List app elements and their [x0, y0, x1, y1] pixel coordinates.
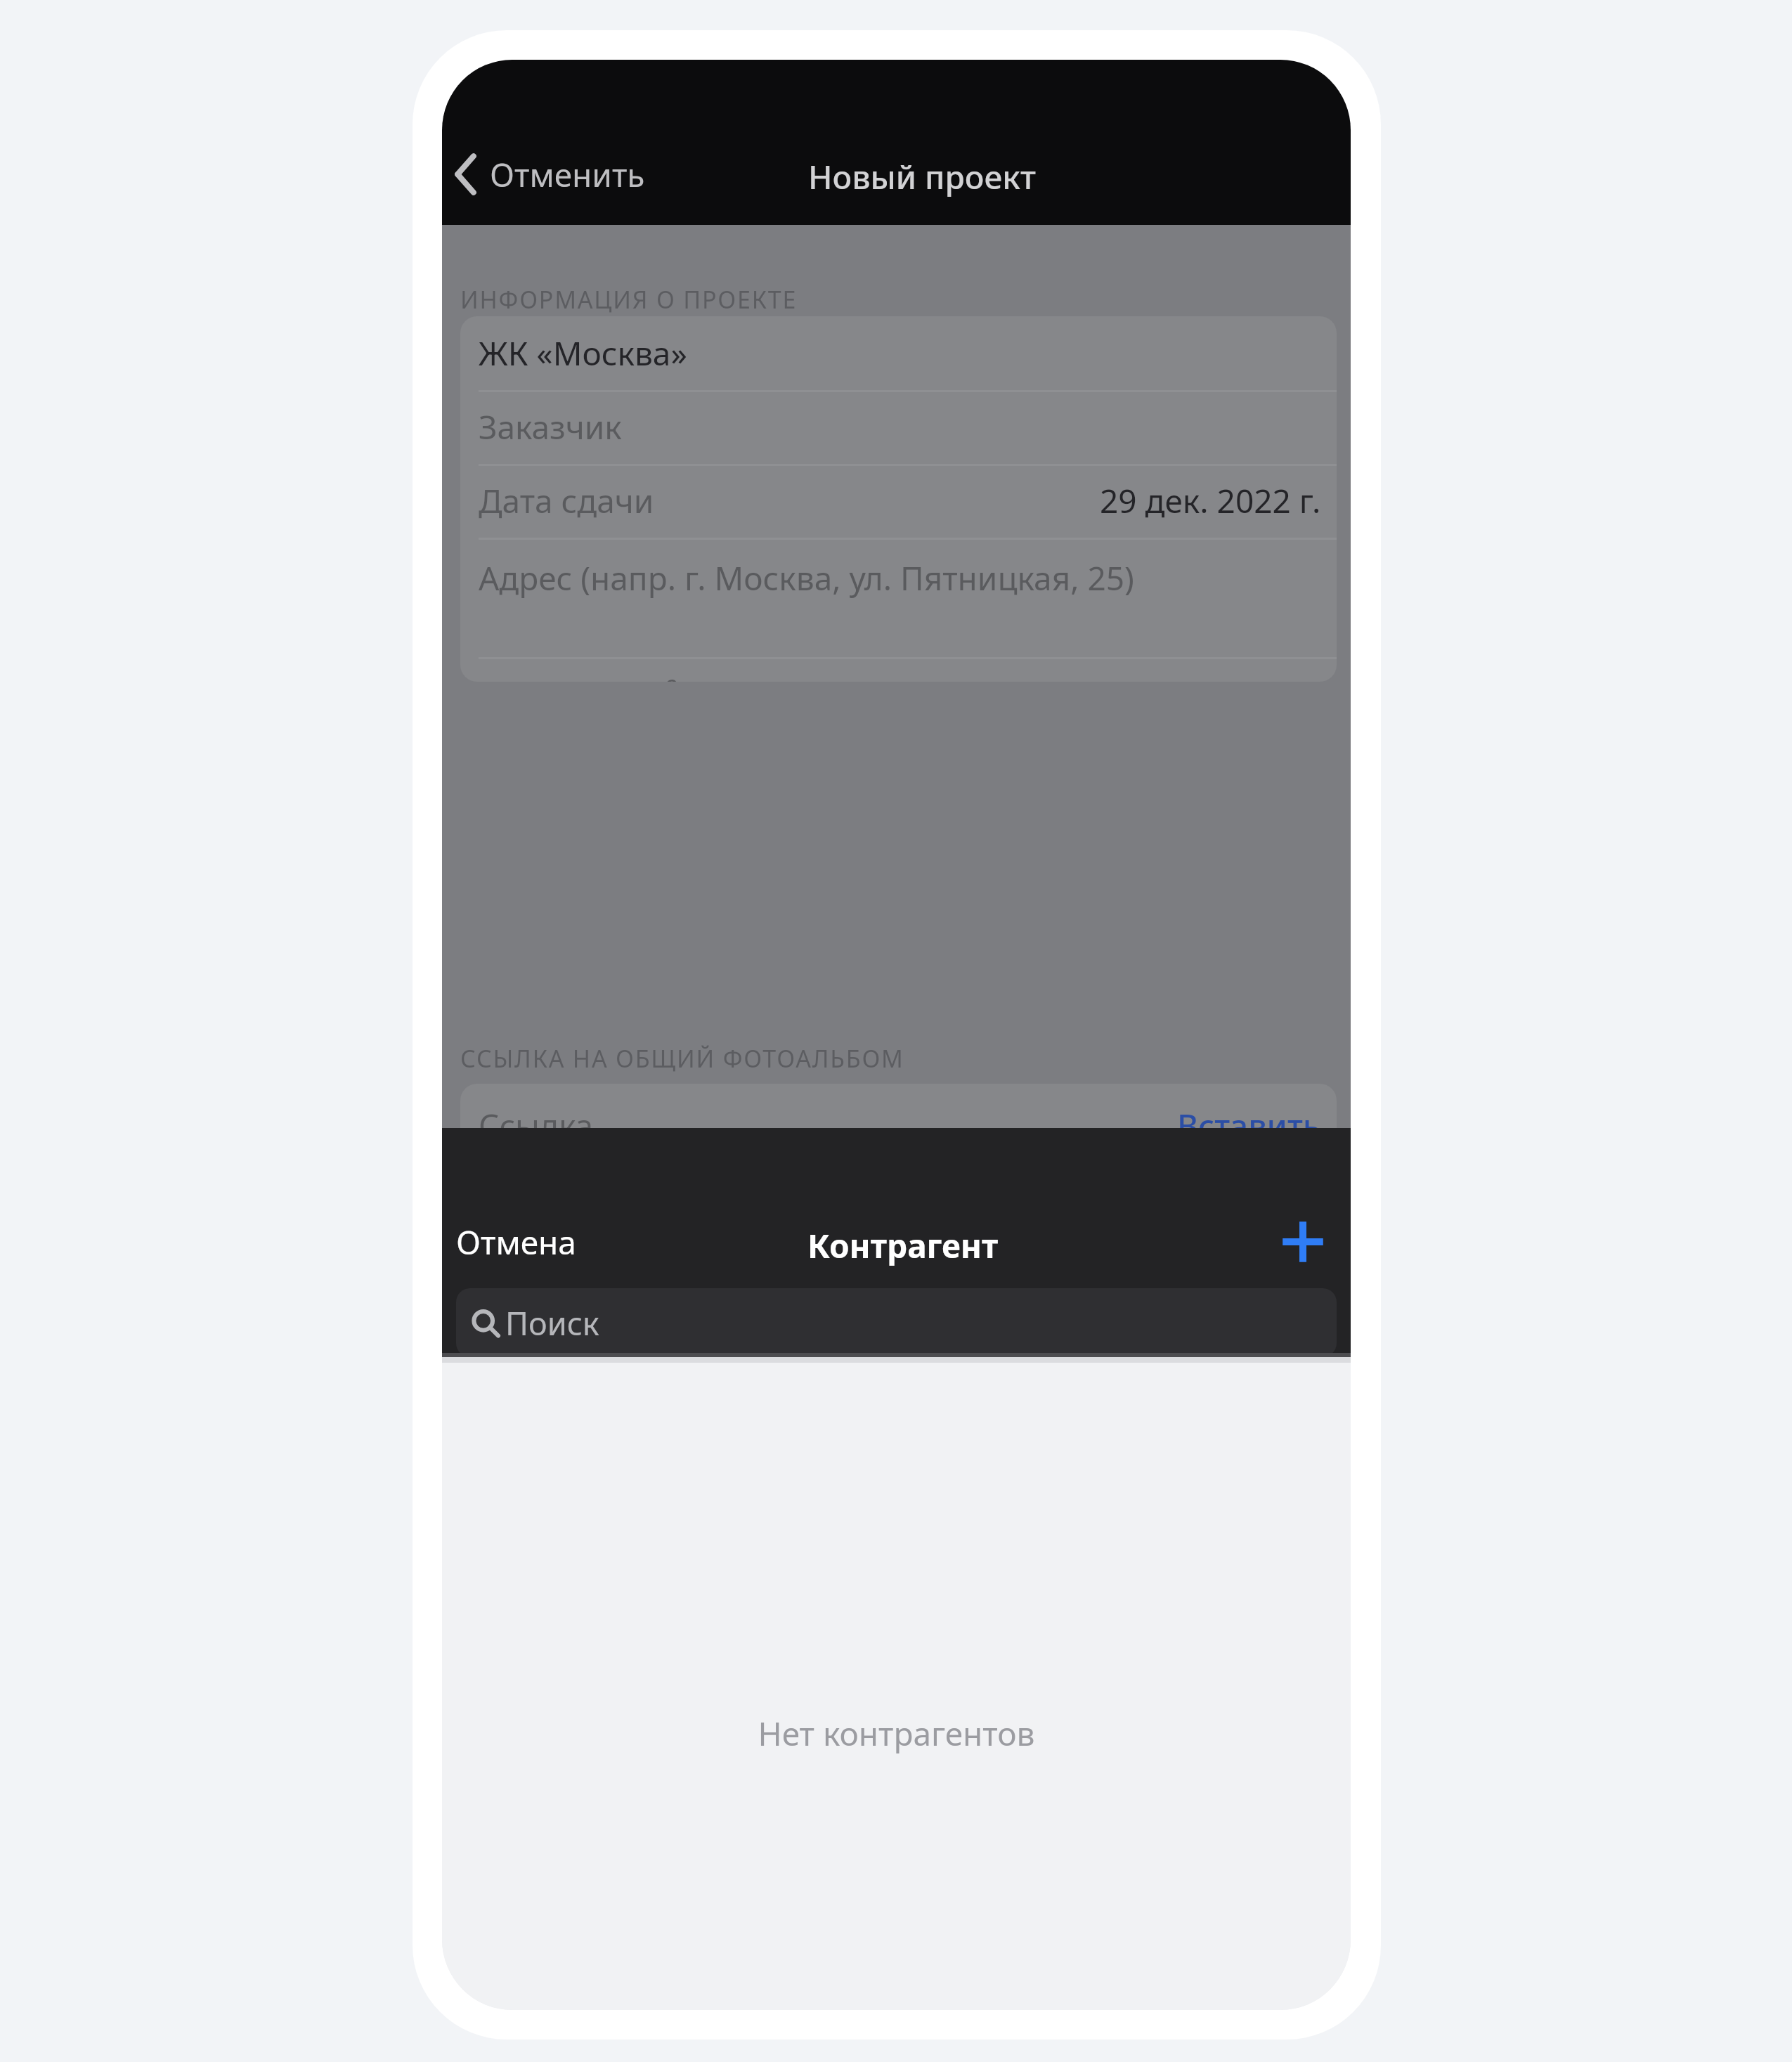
staticText: Новый проект: [808, 155, 1036, 199]
staticText: ЖК «Москва»: [479, 331, 687, 375]
staticText: Отменить: [490, 153, 645, 197]
button[interactable]: Отмена: [446, 1207, 566, 1277]
button[interactable]: Поиск: [456, 1288, 1337, 1357]
staticText: 29 дек. 2022 г.: [1100, 479, 1321, 523]
staticText: Вставить: [1177, 1103, 1321, 1148]
staticText: Ссылка: [479, 1103, 594, 1148]
staticText: ССЫЛКА НА ОБЩИЙ ФОТОАЛЬБОМ: [460, 1042, 904, 1075]
staticText: ИНФОРМАЦИЯ О ПРОЕКТЕ: [460, 283, 798, 316]
button[interactable]: ЖК «Москва»: [460, 316, 1337, 390]
staticText: Площадь, м²: [479, 673, 678, 682]
button[interactable]: Ссылка: [460, 1084, 1337, 1167]
button[interactable]: Дата сдачи: [460, 464, 1337, 538]
staticText: Отмена: [456, 1220, 576, 1264]
button[interactable]: Заказчик: [460, 390, 1337, 464]
staticText: Нет контрагентов: [442, 1711, 1351, 1756]
button[interactable]: Отменить: [446, 141, 645, 207]
staticText: Поиск: [505, 1302, 599, 1344]
button[interactable]: Добавить контрагента: [1268, 1207, 1338, 1277]
button[interactable]: Адрес (напр. г. Москва, ул. Пятницкая, 2…: [460, 538, 1337, 657]
staticText: Заказчик: [479, 405, 622, 449]
staticText: Адрес (напр. г. Москва, ул. Пятницкая, 2…: [479, 556, 1134, 600]
staticText: Дата сдачи: [479, 479, 654, 523]
staticText: Контрагент: [807, 1224, 999, 1268]
